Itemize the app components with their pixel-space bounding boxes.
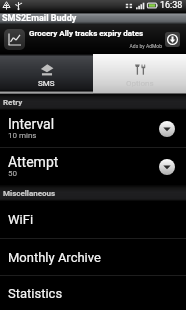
staticText: Attempt xyxy=(8,154,59,170)
button[interactable]: Statistics xyxy=(0,276,186,310)
staticText: Miscellaneous xyxy=(3,189,56,198)
staticText: Interval xyxy=(8,116,55,132)
button[interactable]: Monthly Archive xyxy=(0,239,186,275)
button[interactable]: Expand xyxy=(159,121,175,137)
staticText: SMS2Email Buddy xyxy=(2,13,77,24)
staticText: Grocery Ally tracks expiry dates xyxy=(29,29,144,38)
staticText: 16:38 xyxy=(160,0,183,11)
button[interactable]: Expand xyxy=(159,159,175,175)
button[interactable]: WiFi xyxy=(0,201,186,238)
staticText: SMS xyxy=(38,79,55,88)
staticText: WiFi xyxy=(8,212,34,227)
button[interactable]: Attempt xyxy=(0,148,186,185)
staticText: Monthly Archive xyxy=(8,250,101,265)
button[interactable]: SMS xyxy=(0,54,93,94)
staticText: Retry xyxy=(3,98,23,107)
staticText: 10 mins xyxy=(8,131,37,140)
staticText: Options xyxy=(126,79,154,88)
staticText: Ads by AdMob xyxy=(29,43,162,49)
button[interactable]: Interval xyxy=(0,110,186,147)
button[interactable]: Install app xyxy=(165,32,180,47)
staticText: Statistics xyxy=(8,286,63,301)
button[interactable]: Options xyxy=(93,54,186,94)
staticText: 50 xyxy=(8,169,17,178)
